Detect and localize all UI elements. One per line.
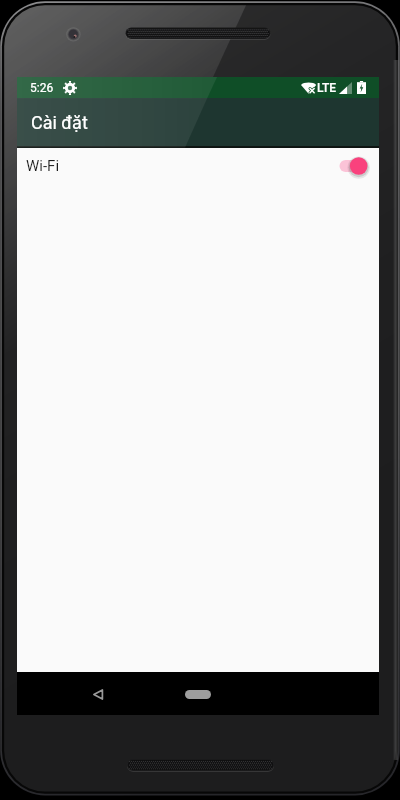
button[interactable]: Back xyxy=(83,679,113,709)
button[interactable]: Home xyxy=(178,683,218,705)
staticText: 5:26 xyxy=(30,81,54,95)
button[interactable]: Wi-Fi toggle xyxy=(331,148,375,184)
staticText: Cài đặt xyxy=(31,112,88,133)
staticText: LTE xyxy=(317,81,337,95)
button[interactable]: Wi-Fi xyxy=(17,148,379,184)
staticText: Wi-Fi xyxy=(26,157,60,175)
